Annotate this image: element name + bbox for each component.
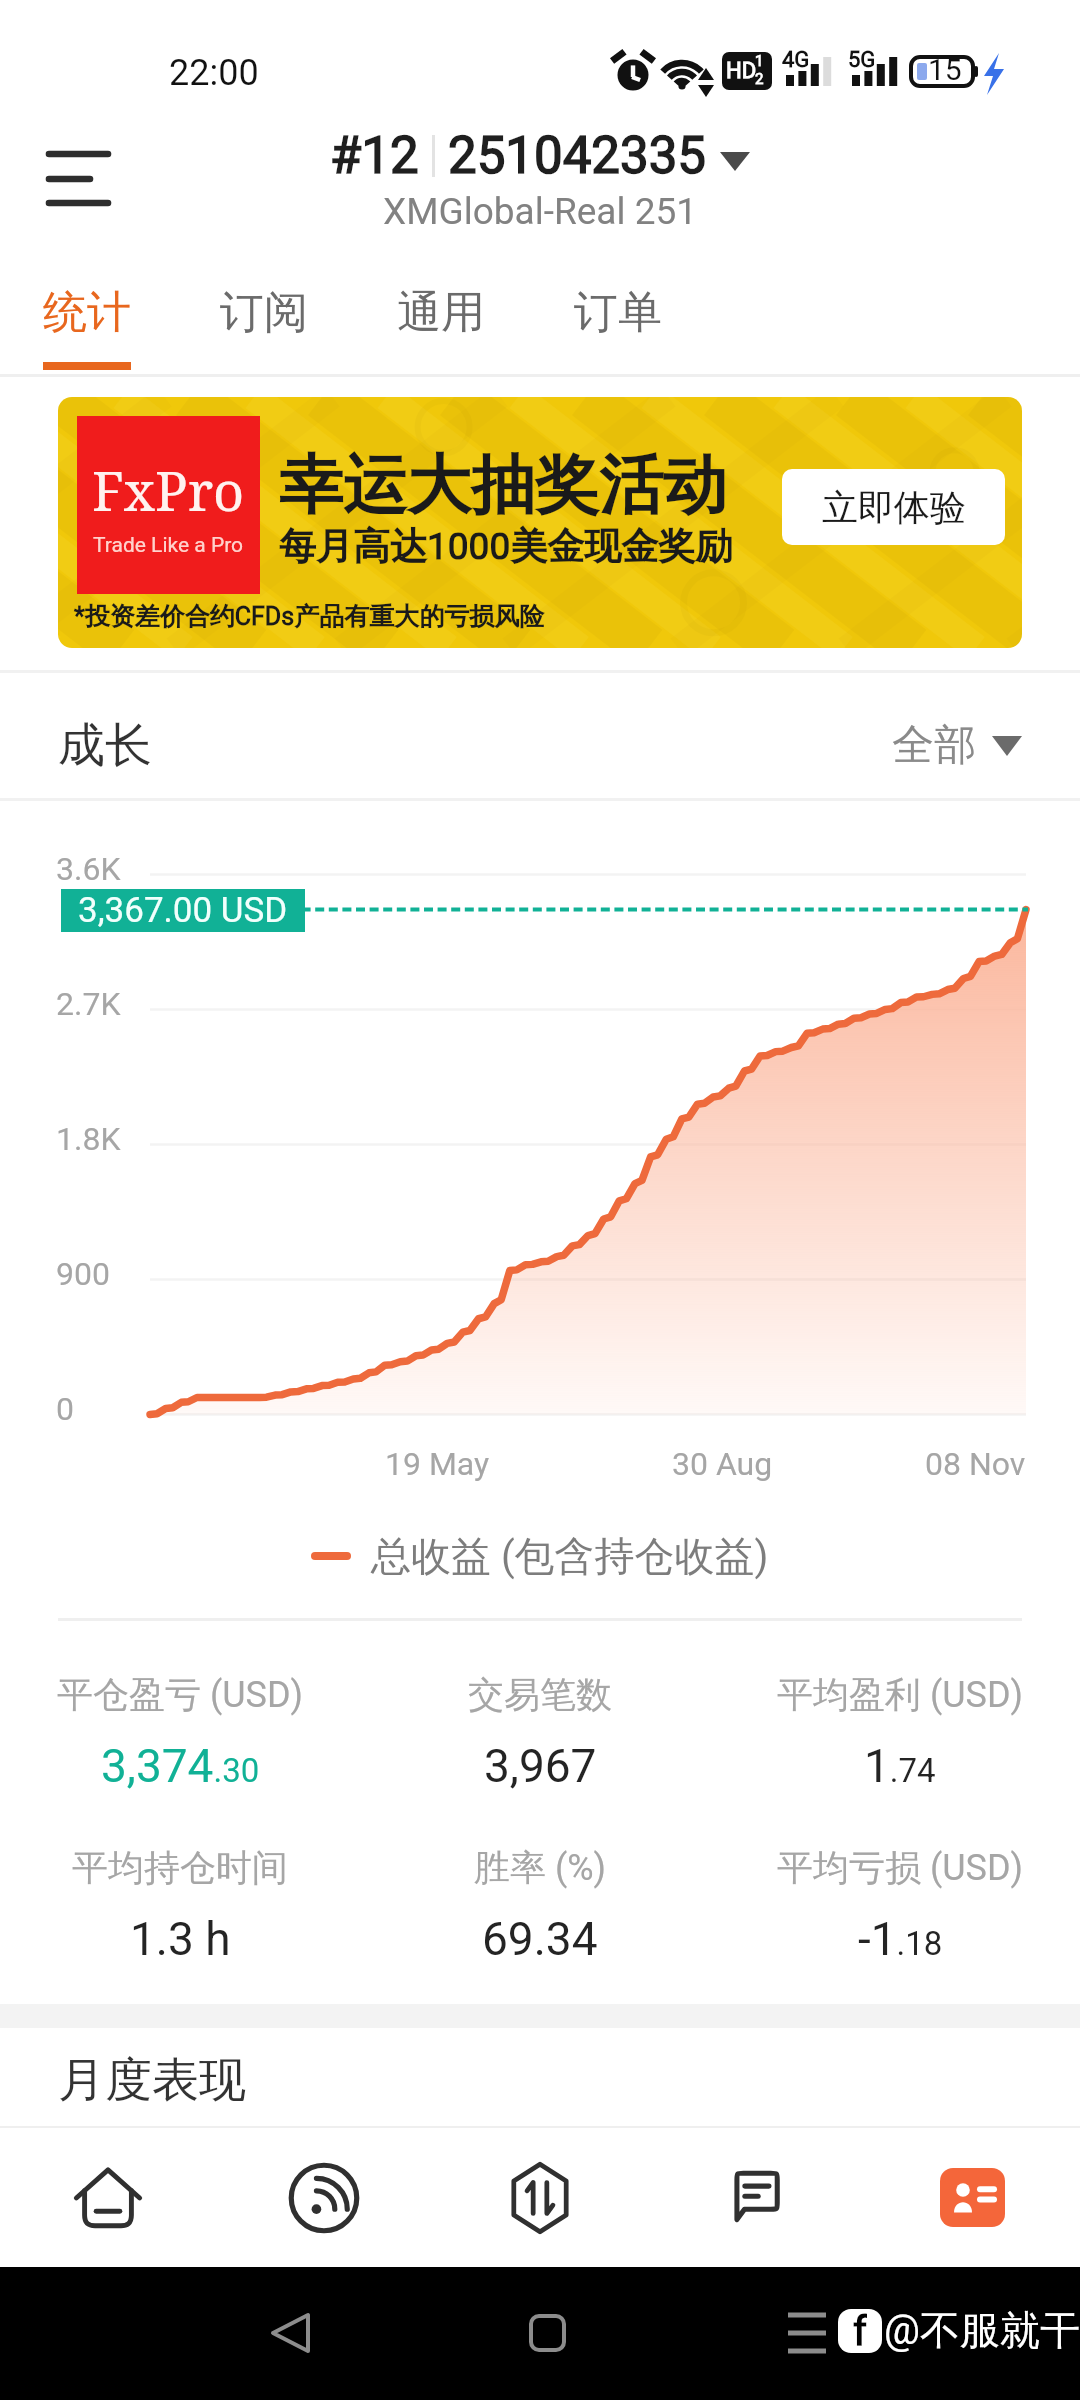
button[interactable]: Accounts [864, 2128, 1080, 2267]
button[interactable]: News [216, 2128, 432, 2267]
button[interactable]: Chat [648, 2128, 864, 2267]
staticText: @不服就干 [884, 2305, 1080, 2355]
staticText: 5G [848, 47, 876, 73]
staticText: FxPro [92, 453, 245, 527]
staticText: 30 Aug [672, 1445, 773, 1483]
staticText: 3,374.30 [101, 1739, 260, 1793]
button[interactable]: #12 [330, 126, 750, 233]
staticText: 08 Nov [925, 1445, 1026, 1483]
staticText: 15 [928, 52, 962, 87]
staticText: HD [726, 58, 757, 84]
staticText: 平仓盈亏 (USD) [57, 1672, 304, 1717]
staticText: 订单 [574, 285, 662, 340]
staticText: Trade Like a Pro [93, 533, 244, 558]
staticText: 251042335 [448, 126, 706, 186]
button[interactable]: Back [255, 2299, 325, 2369]
staticText: 交易笔数 [468, 1672, 612, 1717]
button[interactable]: 统计 [43, 268, 131, 380]
staticText: 2 [755, 70, 764, 88]
staticText: 22:00 [169, 52, 259, 94]
staticText: 总收益 (包含持仓收益) [371, 1531, 769, 1581]
staticText: 1.8K [56, 1120, 121, 1158]
button[interactable]: 通用 [397, 268, 485, 380]
staticText: 统计 [43, 285, 131, 340]
staticText: 4G [782, 47, 810, 73]
staticText: 69.34 [482, 1912, 598, 1966]
staticText: 19 May [385, 1445, 490, 1483]
staticText: 2.7K [56, 985, 121, 1023]
staticText: 订阅 [220, 285, 308, 340]
staticText: -1.18 [858, 1912, 943, 1966]
staticText: XMGlobal-Real 251 [383, 190, 698, 233]
staticText: 3,967 [484, 1739, 597, 1793]
staticText: 3,367.00 USD [78, 890, 288, 931]
staticText: 幸运大抽奖活动 [279, 445, 727, 526]
staticText: 平均亏损 (USD) [777, 1845, 1024, 1890]
staticText: 月度表现 [58, 2051, 246, 2110]
staticText: 1.3 h [130, 1912, 231, 1966]
button[interactable]: 订单 [574, 268, 662, 380]
button[interactable]: 立即体验 [782, 469, 1005, 545]
staticText: 平均盈利 (USD) [777, 1672, 1024, 1717]
staticText: 1.74 [864, 1739, 936, 1793]
staticText: 胜率 (%) [474, 1845, 607, 1890]
staticText: 1 [755, 52, 764, 70]
staticText: 通用 [397, 285, 485, 340]
staticText: *投资差价合约CFDs产品有重大的亏损风险 [74, 601, 545, 632]
staticText: 3.6K [56, 850, 121, 888]
button[interactable]: 订阅 [220, 268, 308, 380]
staticText: f [853, 2309, 867, 2352]
staticText: 平均持仓时间 [72, 1845, 288, 1890]
button[interactable]: 全部 [892, 682, 1022, 809]
staticText: 0 [56, 1390, 74, 1428]
staticText: 900 [56, 1255, 110, 1293]
staticText: 成长 [58, 716, 152, 775]
button[interactable]: Home [0, 2128, 216, 2267]
staticText: 立即体验 [822, 485, 966, 530]
button[interactable]: Trade [432, 2128, 648, 2267]
button[interactable]: Recents [788, 2311, 826, 2351]
staticText: 每月高达1000美金现金奖励 [279, 523, 733, 570]
staticText: 全部 [892, 719, 976, 772]
button[interactable]: FxPro [58, 397, 1022, 648]
button[interactable]: Facebook [838, 2309, 882, 2353]
button[interactable]: Home [513, 2299, 583, 2369]
staticText: #12 [330, 126, 419, 186]
button[interactable]: Menu [26, 122, 130, 226]
